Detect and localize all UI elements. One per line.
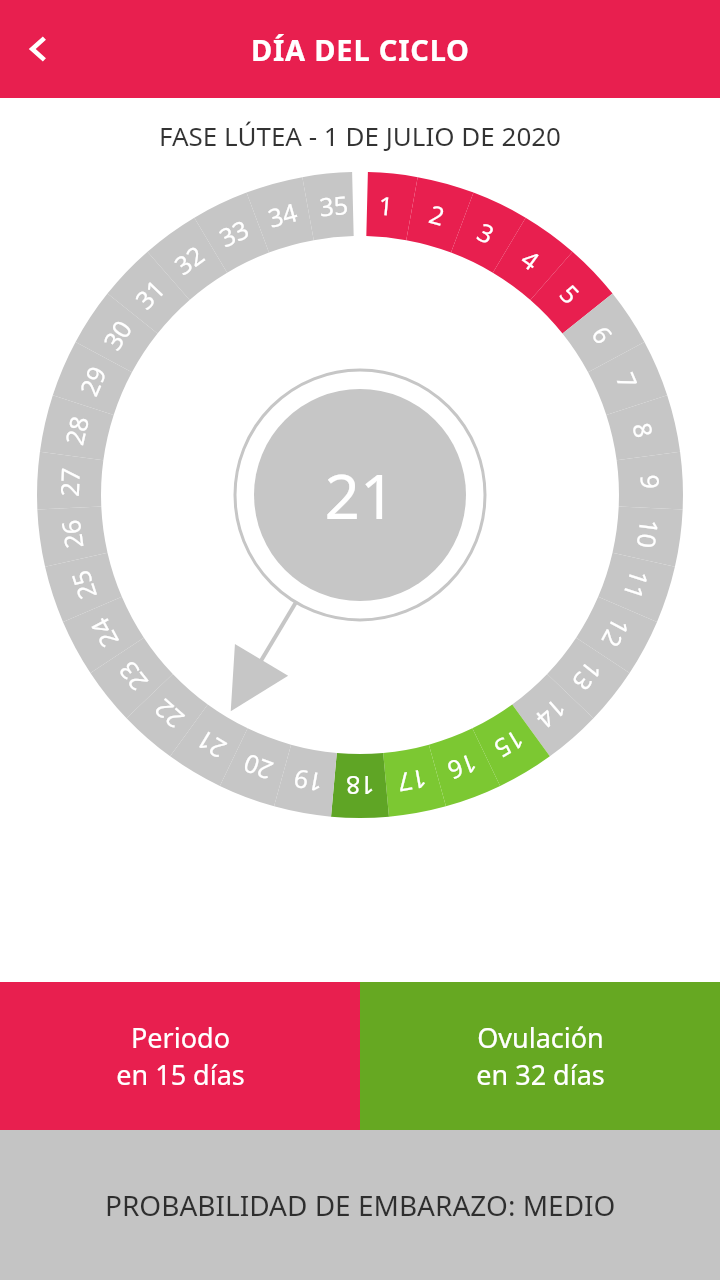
button[interactable]: Back: [0, 11, 76, 87]
button[interactable]: PROBABILIDAD DE EMBARAZO: MEDIO: [0, 1130, 720, 1280]
staticText: Ovulación en 32 días: [476, 1019, 605, 1093]
staticText: PROBABILIDAD DE EMBARAZO: MEDIO: [105, 1186, 616, 1224]
button[interactable]: Periodo en 15 días: [0, 982, 360, 1130]
staticText: Periodo en 15 días: [116, 1019, 245, 1093]
staticText: DÍA DEL CICLO: [251, 30, 470, 69]
staticText: FASE LÚTEA - 1 DE JULIO DE 2020: [159, 118, 561, 153]
button[interactable]: Ovulación en 32 días: [360, 982, 720, 1130]
